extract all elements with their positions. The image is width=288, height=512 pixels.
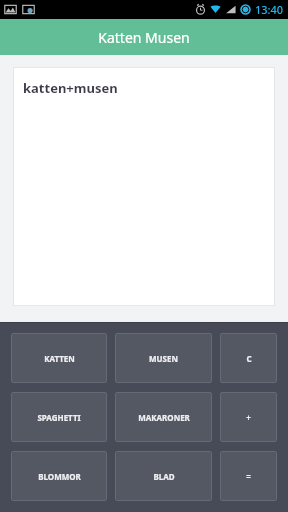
button[interactable]: MAKARONER [115, 392, 212, 442]
staticText: BLOMMOR [38, 471, 81, 482]
button[interactable]: MUSEN [115, 333, 212, 383]
staticText: SPAGHETTI [37, 412, 81, 423]
staticText: KATTEN [44, 353, 75, 364]
staticText: C [246, 353, 252, 364]
staticText: katten+musen [23, 79, 118, 97]
button[interactable]: C [220, 333, 277, 383]
staticText: = [246, 471, 251, 482]
button[interactable]: = [220, 451, 277, 501]
button[interactable]: KATTEN [11, 333, 107, 383]
staticText: MUSEN [149, 353, 178, 364]
staticText: 13:40 [255, 2, 284, 17]
button[interactable]: BLOMMOR [11, 451, 107, 501]
button[interactable]: SPAGHETTI [11, 392, 107, 442]
staticText: BLAD [153, 471, 175, 482]
staticText: + [246, 412, 251, 423]
button[interactable]: BLAD [115, 451, 212, 501]
staticText: MAKARONER [138, 412, 190, 423]
staticText: Katten Musen [98, 28, 190, 47]
button[interactable]: + [220, 392, 277, 442]
